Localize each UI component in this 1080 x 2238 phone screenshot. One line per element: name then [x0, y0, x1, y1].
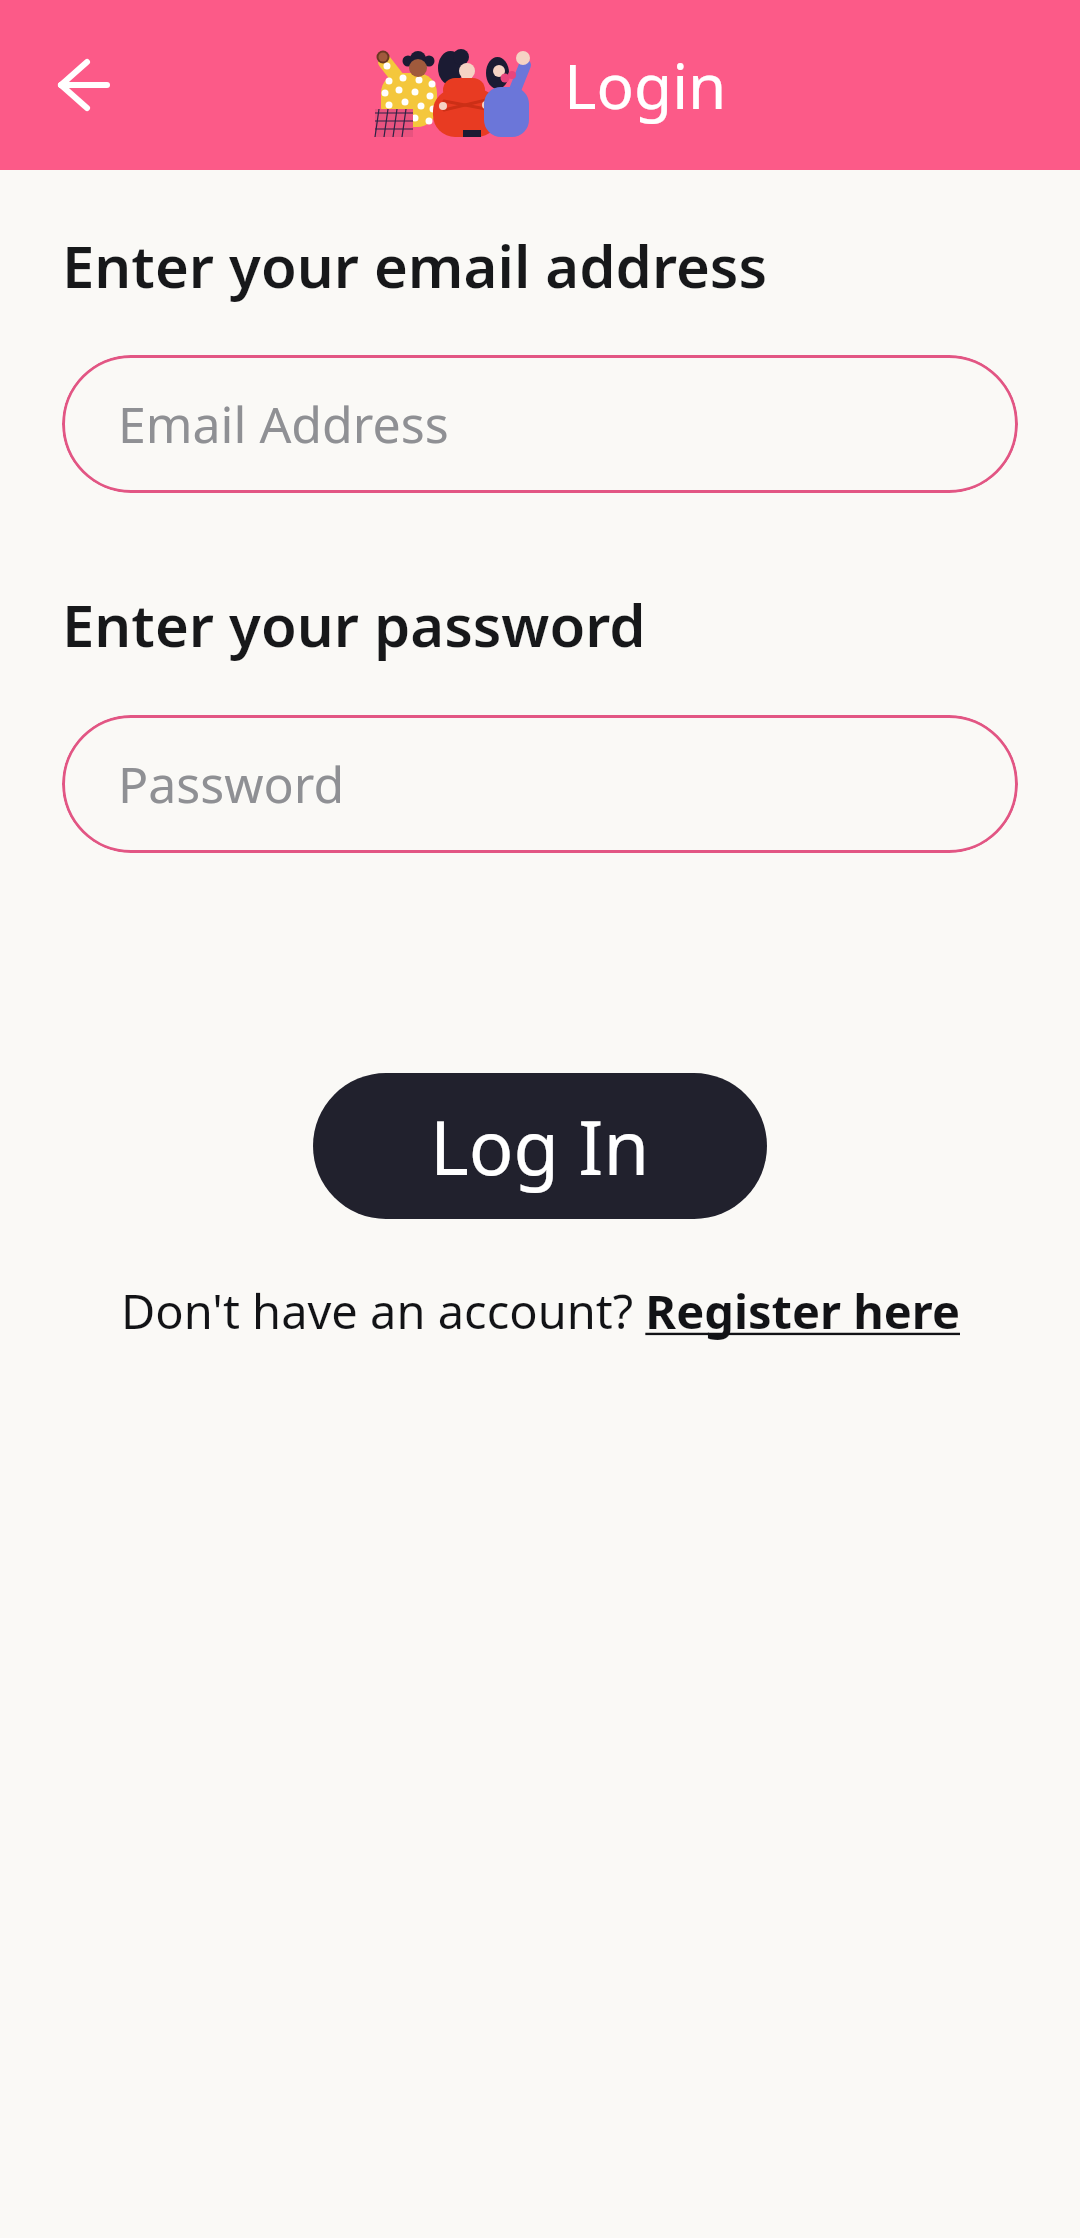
staticText: Enter your password: [62, 585, 646, 664]
staticText: Don't have an account? Register here: [121, 1279, 960, 1343]
button[interactable]: Email Address: [62, 355, 1018, 493]
staticText: Password: [118, 750, 345, 818]
button[interactable]: [58, 59, 110, 111]
staticText: Log In: [430, 1096, 650, 1197]
button[interactable]: Don't have an account? Register here: [121, 1279, 960, 1343]
staticText: Enter your email address: [62, 226, 768, 305]
staticText: Email Address: [118, 390, 449, 458]
button[interactable]: Log In: [313, 1073, 767, 1219]
button[interactable]: Password: [62, 715, 1018, 853]
staticText: Login: [564, 43, 727, 127]
